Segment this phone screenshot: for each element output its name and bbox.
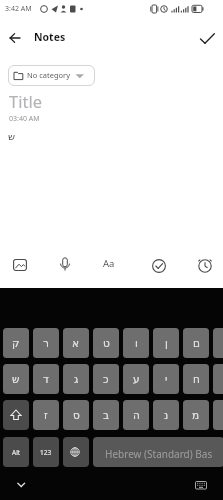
button[interactable]: ד (33, 364, 59, 394)
staticText: ד (43, 373, 49, 385)
button[interactable]: ג (63, 364, 89, 394)
staticText: Aa (103, 257, 115, 270)
button[interactable]: כ (93, 364, 119, 394)
staticText: 3:42 AM (5, 4, 32, 14)
button[interactable] (63, 437, 89, 467)
button[interactable]: י (153, 364, 179, 394)
staticText: 03:40 AM (9, 114, 40, 124)
staticText: ע (133, 373, 140, 385)
button[interactable]: צ (213, 400, 223, 430)
staticText: ז (44, 409, 48, 421)
staticText: ק (12, 337, 20, 349)
button[interactable] (10, 476, 32, 492)
button[interactable]: ק (3, 328, 29, 358)
button[interactable] (196, 27, 218, 49)
button[interactable] (145, 254, 173, 278)
staticText: Hebrew (Standard) Bas (105, 447, 213, 461)
staticText: ס (73, 409, 80, 421)
staticText: ם (193, 337, 200, 349)
staticText: ר (43, 337, 49, 349)
button[interactable]: ס (63, 400, 89, 430)
button[interactable]: נ (153, 400, 179, 430)
staticText: ג (74, 373, 79, 385)
staticText: ו (135, 337, 138, 349)
staticText: ט (103, 337, 110, 349)
button[interactable] (6, 254, 34, 278)
button[interactable] (51, 254, 79, 278)
staticText: כ (103, 373, 109, 385)
button[interactable]: Hebrew (Standard) Bas (93, 437, 223, 467)
staticText: ן (165, 337, 168, 349)
staticText: Title (9, 90, 42, 112)
button[interactable]: ז (33, 400, 59, 430)
button[interactable]: ו (123, 328, 149, 358)
staticText: 123 (40, 448, 52, 457)
staticText: מ (192, 409, 200, 421)
button[interactable]: פ (213, 328, 223, 358)
button[interactable]: Alt (3, 437, 29, 467)
button[interactable] (190, 476, 212, 492)
button[interactable] (3, 400, 29, 430)
button[interactable] (4, 27, 26, 49)
button[interactable]: ן (153, 328, 179, 358)
staticText: א (72, 337, 80, 349)
button[interactable]: ה (123, 400, 149, 430)
button[interactable]: ע (123, 364, 149, 394)
staticText: ש (12, 373, 20, 385)
button[interactable]: ם (183, 328, 209, 358)
button[interactable]: ט (93, 328, 119, 358)
button[interactable] (191, 254, 219, 278)
button[interactable]: ר (33, 328, 59, 358)
button[interactable]: ש (3, 364, 29, 394)
staticText: י (165, 373, 168, 385)
staticText: ח (193, 373, 200, 385)
button[interactable]: ב (93, 400, 119, 430)
staticText: ש (8, 131, 16, 143)
button[interactable]: No category (8, 65, 95, 86)
staticText: No category (27, 70, 71, 80)
button[interactable]: 123 (33, 437, 59, 467)
staticText: ה (133, 409, 140, 421)
staticText: Alt (12, 448, 21, 457)
staticText: נ (164, 409, 169, 421)
button[interactable]: ח (183, 364, 209, 394)
staticText: Notes (34, 30, 66, 44)
button[interactable]: ל (213, 364, 223, 394)
button[interactable]: מ (183, 400, 209, 430)
staticText: ב (103, 409, 110, 421)
button[interactable]: א (63, 328, 89, 358)
button[interactable]: Aa (98, 254, 126, 278)
